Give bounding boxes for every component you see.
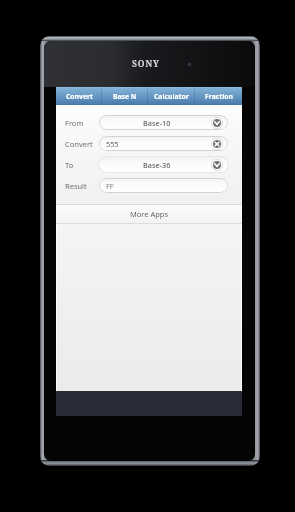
staticText: Base-36 [143, 160, 171, 170]
button[interactable]: FF [99, 178, 228, 193]
button[interactable]: Base-10 [99, 115, 228, 130]
staticText: 555 [106, 139, 119, 149]
button[interactable]: More Apps [56, 205, 242, 223]
staticText: Fraction [205, 92, 233, 101]
button[interactable]: Base-36 [99, 157, 228, 172]
button[interactable]: Base N [102, 87, 148, 105]
button[interactable]: Fraction [195, 87, 242, 105]
staticText: From [65, 118, 84, 128]
staticText: Base-10 [143, 118, 171, 128]
staticText: Convert [65, 139, 93, 149]
staticText: SONY [132, 58, 160, 70]
button[interactable]: Convert [56, 87, 102, 105]
button[interactable]: Calculator [148, 87, 195, 105]
staticText: FF [106, 181, 114, 191]
staticText: Calculator [154, 92, 189, 101]
button[interactable]: Open dropdown [211, 117, 223, 129]
button[interactable]: Clear text [211, 138, 223, 150]
staticText: Result [65, 181, 87, 191]
staticText: To [65, 160, 74, 170]
staticText: Convert [66, 92, 93, 101]
button[interactable]: Open dropdown [211, 159, 223, 171]
button[interactable]: 555 [99, 136, 228, 151]
staticText: More Apps [130, 209, 169, 219]
staticText: Base N [113, 92, 137, 101]
